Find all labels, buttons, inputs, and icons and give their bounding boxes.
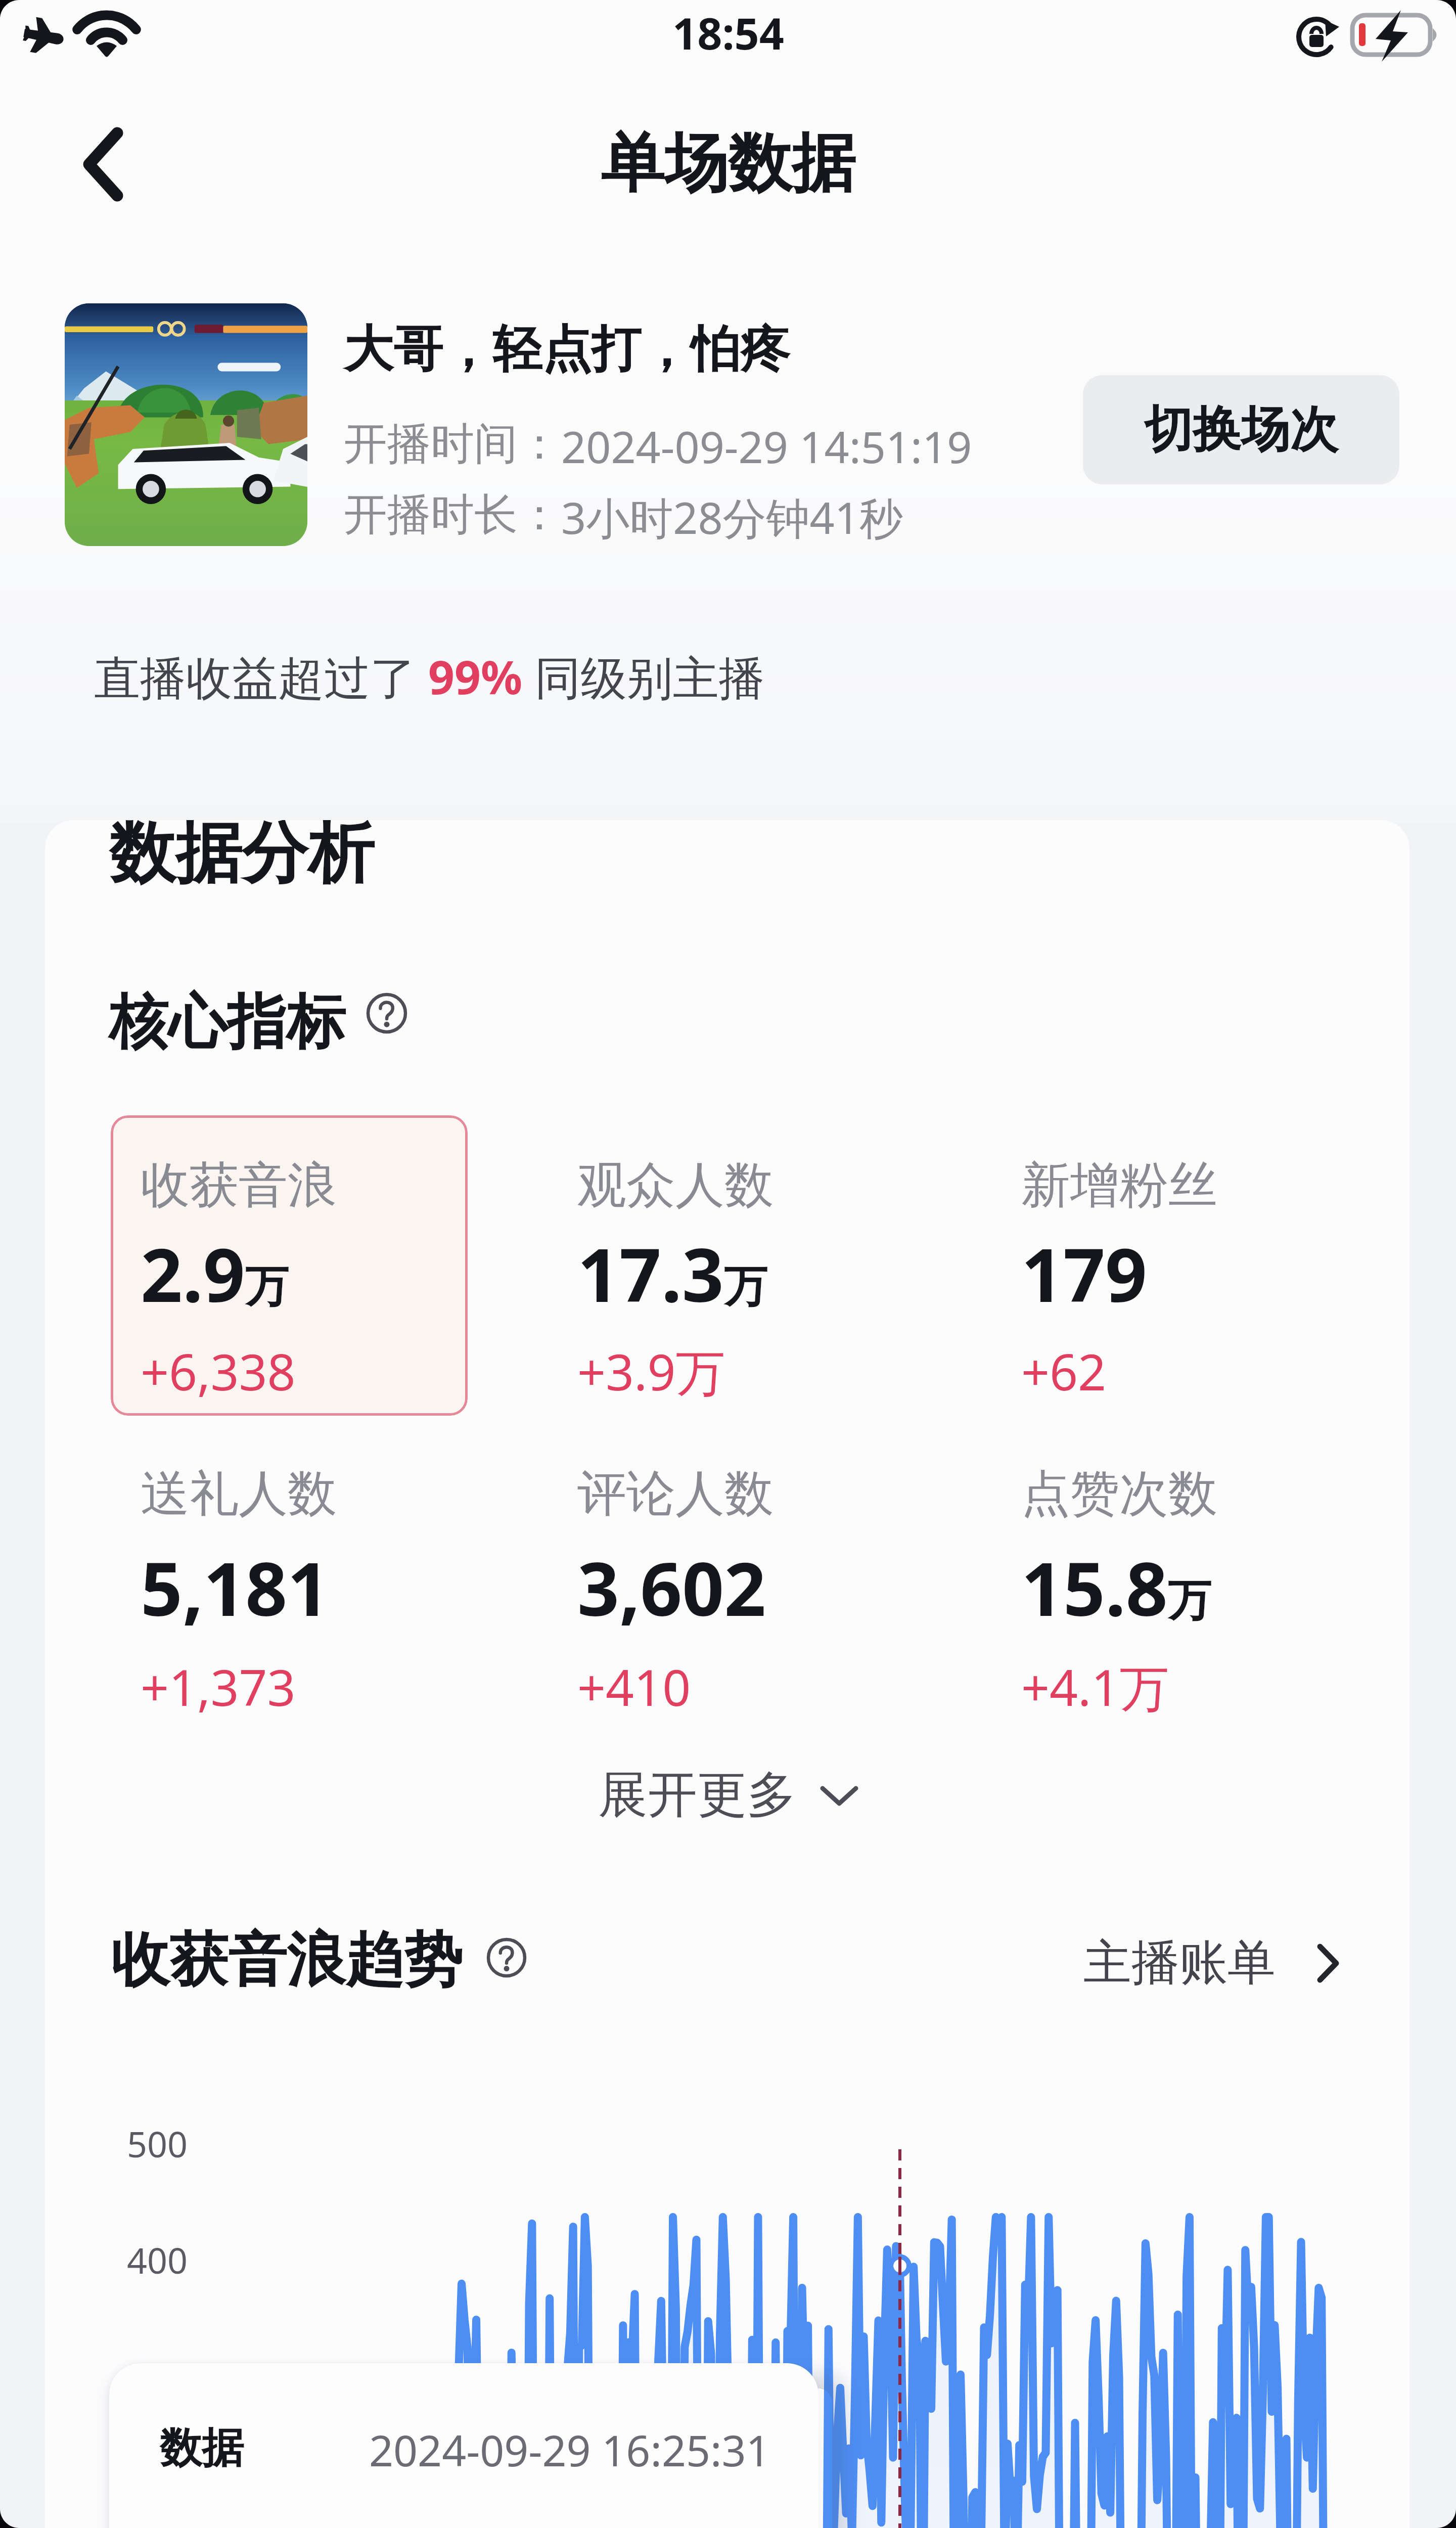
staticText: 开播时长： [344, 487, 561, 542]
staticText: 直播收益超过了 [94, 645, 428, 708]
button[interactable]: Live replay cover [65, 303, 307, 546]
staticText: 99% [428, 645, 523, 708]
staticText: +62 [1021, 1337, 1107, 1405]
staticText: +3.9万 [577, 1337, 725, 1405]
staticText: +6,338 [141, 1337, 296, 1405]
staticText: 主播账单 [1083, 1933, 1276, 1994]
staticText: 5,181 [141, 1538, 330, 1637]
staticText: 179 [1021, 1224, 1147, 1323]
staticText: 观众人数 [577, 1155, 773, 1216]
staticText: 核心指标 [109, 985, 345, 1059]
staticText: 3,602 [577, 1538, 766, 1637]
staticText: +410 [577, 1653, 691, 1720]
staticText: 17.3 [577, 1224, 724, 1323]
staticText: 18:54 [672, 3, 784, 62]
staticText: 500 [127, 2119, 188, 2168]
button[interactable]: Help: sound wave trend [486, 1937, 527, 1978]
staticText: 万 [245, 1259, 289, 1314]
staticText: 400 [127, 2236, 188, 2284]
button[interactable]: 点赞次数 [991, 1424, 1348, 1724]
staticText: 同级别主播 [523, 645, 765, 708]
button[interactable]: 主播账单 [1068, 1924, 1355, 2003]
staticText: 收获音浪 [141, 1155, 337, 1216]
button[interactable]: Back [61, 109, 152, 205]
staticText: 2024-09-29 14:51:19 [561, 417, 972, 476]
staticText: 2.9 [141, 1224, 245, 1323]
button[interactable]: 切换场次 [1083, 375, 1399, 484]
staticText: 数据分析 [109, 820, 374, 895]
staticText: 新增粉丝 [1021, 1155, 1217, 1216]
staticText: 开播时间： [344, 417, 561, 471]
staticText: 万 [724, 1259, 767, 1314]
button[interactable]: 收获音浪 [111, 1115, 468, 1416]
staticText: +1,373 [141, 1653, 296, 1720]
staticText: 单场数据 [601, 124, 855, 204]
staticText: 送礼人数 [141, 1463, 337, 1525]
button[interactable]: 新增粉丝 [991, 1115, 1348, 1416]
staticText: +4.1万 [1021, 1653, 1169, 1721]
staticText: 大哥，轻点打，怕疼 [344, 319, 790, 381]
staticText: 2024-09-29 16:25:31 [369, 2421, 770, 2478]
button[interactable]: 送礼人数 [111, 1424, 468, 1724]
staticText: 数据 [160, 2422, 244, 2475]
staticText: 收获音浪趋势 [111, 1923, 463, 1997]
button[interactable]: 数据 [109, 2363, 818, 2528]
staticText: 切换场次 [1144, 399, 1338, 461]
button[interactable]: 展开更多 [581, 1753, 878, 1837]
staticText: 3小时28分钟41秒 [561, 487, 903, 547]
button[interactable]: 评论人数 [548, 1424, 904, 1724]
staticText: 万 [1168, 1573, 1211, 1628]
button[interactable]: 观众人数 [548, 1115, 904, 1416]
staticText: 展开更多 [598, 1764, 796, 1826]
button[interactable]: Help: core metrics [366, 992, 407, 1034]
staticText: 点赞次数 [1021, 1463, 1217, 1525]
staticText: 评论人数 [577, 1463, 773, 1525]
staticText: 15.8 [1021, 1538, 1168, 1637]
